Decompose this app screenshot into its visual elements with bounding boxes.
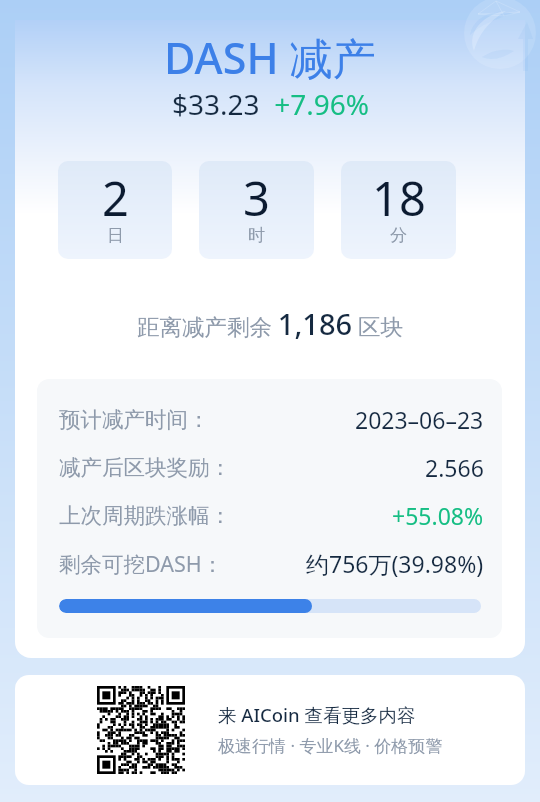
- staticText: 2.566: [425, 452, 484, 483]
- staticText: 上次周期跌涨幅：: [59, 502, 231, 529]
- staticText: 减产后区块奖励：: [59, 454, 231, 481]
- staticText: DASH 减产: [164, 28, 376, 87]
- button[interactable]: 预计减产时间：: [59, 395, 484, 443]
- staticText: $33.23 +7.96%: [172, 85, 369, 123]
- button[interactable]: 18: [341, 161, 456, 259]
- button[interactable]: QR code - open AICoin app: [15, 675, 525, 785]
- staticText: 2023–06–23: [355, 404, 484, 435]
- staticText: 2: [102, 166, 129, 230]
- staticText: 分: [390, 225, 407, 246]
- staticText: 极速行情 · 专业K线 · 价格预警: [218, 734, 443, 757]
- staticText: +55.08%: [392, 500, 484, 531]
- button[interactable]: 3: [199, 161, 314, 259]
- staticText: 剩余可挖DASH：: [59, 549, 224, 578]
- staticText: 18: [372, 166, 426, 230]
- button[interactable]: 减产后区块奖励：: [59, 443, 484, 491]
- staticText: 预计减产时间：: [59, 406, 210, 433]
- button[interactable]: 2: [58, 161, 172, 259]
- staticText: 距离减产剩余 1,186 区块: [137, 304, 403, 343]
- button[interactable]: 上次周期跌涨幅：: [59, 491, 484, 539]
- button[interactable]: 剩余可挖DASH：: [59, 539, 484, 587]
- staticText: 3: [243, 166, 270, 230]
- staticText: 日: [107, 225, 124, 246]
- staticText: 约756万(39.98%): [306, 548, 484, 579]
- staticText: 时: [248, 225, 265, 246]
- staticText: 来 AICoin 查看更多内容: [218, 702, 416, 727]
- other: QR code - open AICoin app: [97, 686, 185, 774]
